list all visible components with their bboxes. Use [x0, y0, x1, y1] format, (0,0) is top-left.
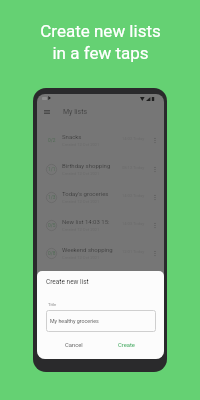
button[interactable]: 0/2 [37, 126, 164, 154]
button[interactable]: More options [151, 164, 159, 175]
staticText: My lists [63, 108, 88, 116]
button[interactable]: More options [151, 248, 159, 259]
staticText: Weekend shopping [62, 246, 113, 253]
staticText: Today's groceries [62, 190, 109, 197]
staticText: My healthy groceries [50, 318, 99, 324]
staticText: 0/8 [48, 251, 56, 257]
button[interactable]: More options [151, 220, 159, 231]
staticText: 1/3 [48, 195, 56, 201]
staticText: Title [48, 302, 57, 307]
staticText: 0/5 [48, 223, 56, 229]
staticText: Create new lists [40, 21, 161, 41]
button[interactable]: 1/1 [37, 155, 164, 183]
staticText: 0/2 [48, 138, 56, 144]
button[interactable]: 0/5 [37, 211, 164, 239]
button[interactable]: Cancel [63, 339, 84, 351]
staticText: Birthday shopping [62, 162, 111, 169]
button[interactable]: More options [151, 192, 159, 203]
button[interactable]: 1/3 [37, 183, 164, 211]
staticText: Snacks [62, 133, 82, 140]
staticText: Create [118, 342, 135, 349]
staticText: Create new list [46, 278, 89, 286]
button[interactable]: Create [116, 339, 137, 351]
button[interactable]: Open navigation menu [41, 106, 52, 118]
button[interactable]: More options [151, 135, 159, 146]
staticText: 1/1 [48, 167, 56, 173]
staticText: in a few taps [52, 43, 149, 63]
staticText: Cancel [65, 342, 83, 349]
button[interactable]: 0/8 [37, 239, 164, 267]
staticText: New list 14:03 15: [62, 218, 110, 225]
